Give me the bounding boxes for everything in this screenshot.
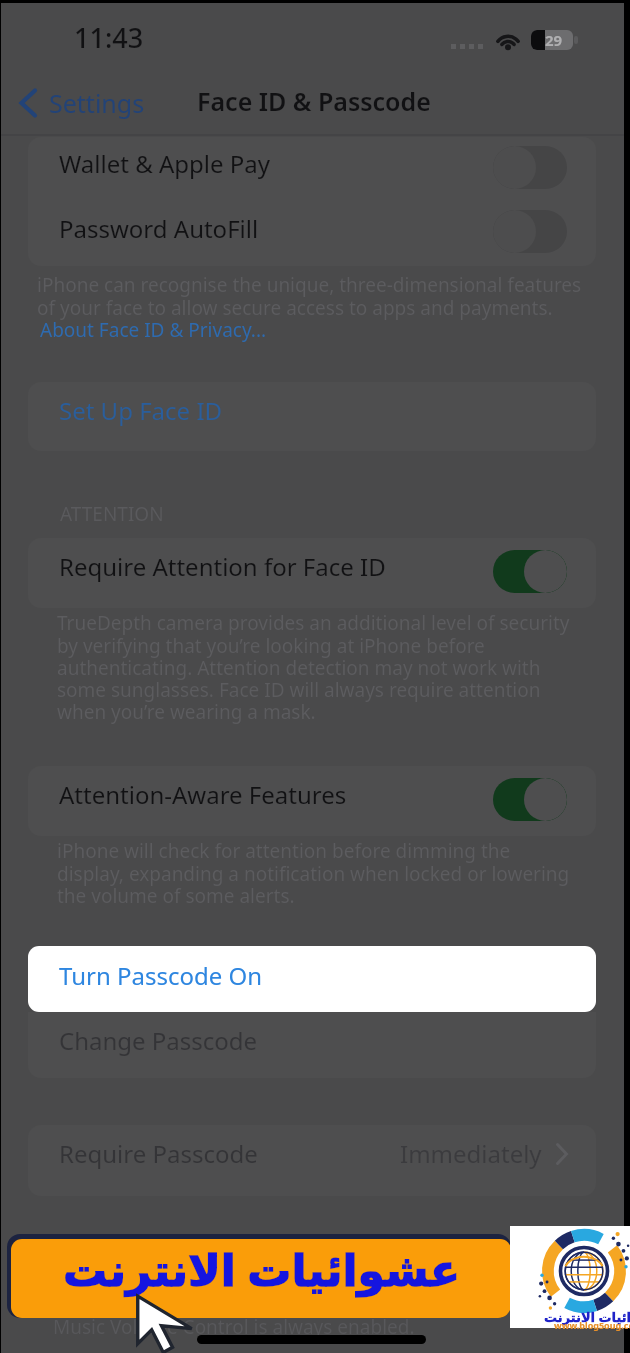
staticText: عشوائيات الانترنت xyxy=(544,1308,630,1326)
staticText: 29 xyxy=(545,30,563,50)
staticText: iPhone will check for attention before d… xyxy=(57,838,627,908)
button[interactable]: عشوائيات الانترنت xyxy=(7,1234,511,1318)
staticText: www.blog5oug.com xyxy=(554,1319,630,1331)
staticText: Set Up Face ID xyxy=(59,394,223,427)
button[interactable]: Turn Passcode On xyxy=(28,946,596,1012)
button[interactable] xyxy=(28,201,596,266)
staticText: Immediately xyxy=(400,1137,542,1170)
button[interactable]: Toggle off xyxy=(493,146,567,189)
staticText: Password AutoFill xyxy=(59,212,259,245)
button[interactable]: About Face ID & Privacy... xyxy=(37,317,270,343)
button[interactable]: Set Up Face ID xyxy=(28,382,596,451)
staticText: Music Volume Control is always enabled. xyxy=(53,1314,415,1340)
staticText: Attention-Aware Features xyxy=(59,778,347,811)
staticText: Wallet & Apple Pay xyxy=(59,147,270,180)
staticText: Settings xyxy=(49,86,145,120)
staticText: ATTENTION xyxy=(60,501,164,527)
button[interactable]: عشوائيات الانترنت xyxy=(510,1226,630,1328)
button[interactable] xyxy=(28,766,596,836)
other: Pointer xyxy=(136,1295,194,1353)
staticText: Face ID & Passcode xyxy=(197,84,431,118)
staticText: Change Passcode xyxy=(59,1024,258,1057)
button[interactable] xyxy=(28,137,596,201)
button[interactable]: Require Passcode xyxy=(28,1125,596,1196)
staticText: 11:43 xyxy=(74,19,144,56)
button[interactable] xyxy=(28,538,596,608)
staticText: عشوائيات الانترنت xyxy=(63,1239,460,1299)
staticText: Require Attention for Face ID xyxy=(59,550,386,583)
button[interactable]: Toggle on xyxy=(493,550,567,593)
staticText: iPhone can recognise the unique, three-d… xyxy=(37,272,607,320)
staticText: About Face ID & Privacy... xyxy=(40,317,267,343)
staticText: TrueDepth camera provides an additional … xyxy=(57,610,627,724)
button[interactable]: Toggle on xyxy=(493,778,567,821)
staticText: Require Passcode xyxy=(59,1137,258,1170)
button[interactable]: Change Passcode xyxy=(28,1012,596,1078)
button[interactable]: Toggle off xyxy=(493,210,567,253)
button[interactable]: Settings xyxy=(17,84,149,122)
staticText: Turn Passcode On xyxy=(59,959,263,992)
